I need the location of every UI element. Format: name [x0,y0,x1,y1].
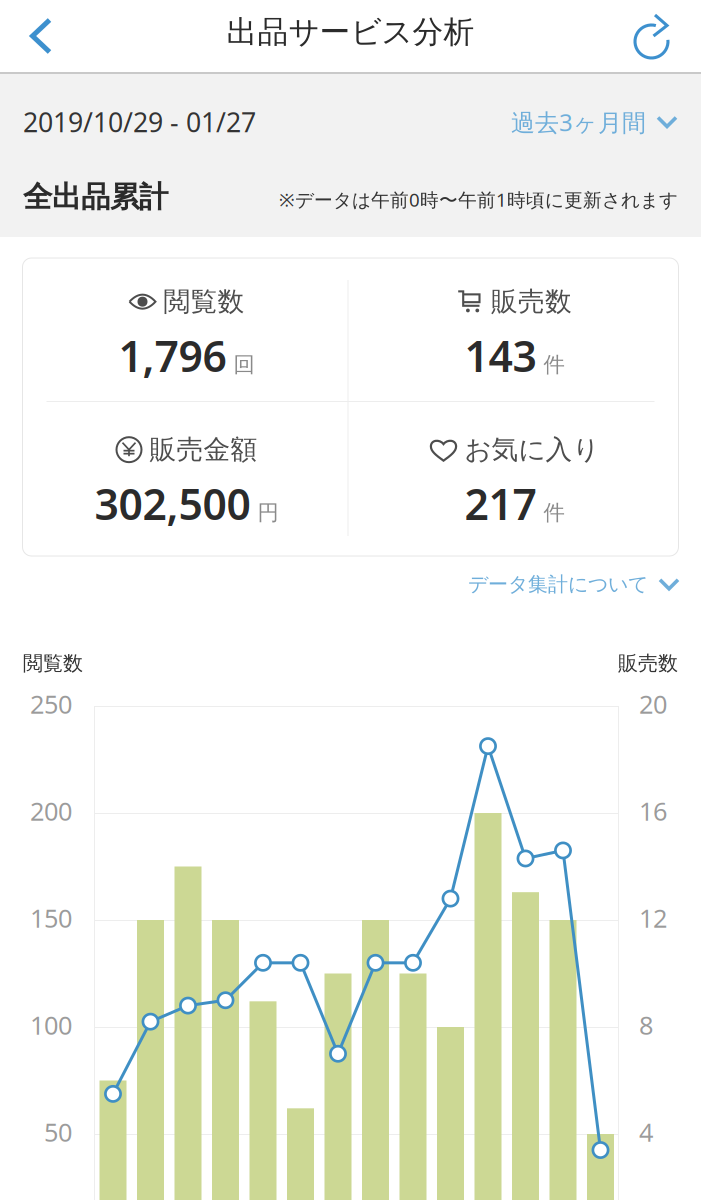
staticText: 全出品累計 [23,179,168,215]
staticText: 件 [543,499,564,526]
staticText: 8 [639,1008,653,1042]
staticText: 回 [233,351,254,378]
staticText: 143 [464,327,536,384]
staticText: 217 [464,475,536,532]
staticText: 12 [639,901,667,935]
button[interactable]: 戻る [0,3,82,69]
staticText: 円 [257,499,278,526]
staticText: 販売数 [491,285,572,318]
staticText: 1,796 [118,327,226,384]
staticText: 150 [30,901,72,935]
staticText: 200 [30,794,72,828]
staticText: 2019/10/29 - 01/27 [23,104,256,140]
staticText: ※データは午前0時〜午前1時頃に更新されます [279,187,678,212]
staticText: お気に入り [464,433,599,466]
button[interactable]: 更新 [619,3,685,69]
staticText: 販売数 [618,651,678,676]
staticText: 4 [639,1115,653,1149]
staticText: 件 [543,351,564,378]
staticText: 50 [44,1115,72,1149]
button[interactable]: データ集計について [468,572,680,597]
staticText: データ集計について [468,572,648,597]
staticText: 302,500 [94,475,250,532]
staticText: 出品サービス分析 [226,13,474,51]
staticText: 閲覧数 [23,651,83,676]
staticText: 20 [639,687,667,721]
staticText: 閲覧数 [163,285,244,318]
staticText: 250 [30,687,72,721]
button[interactable]: 過去3ヶ月間 [511,106,678,138]
staticText: 100 [30,1008,72,1042]
staticText: 過去3ヶ月間 [511,106,646,138]
staticText: 販売金額 [149,433,257,466]
staticText: 16 [639,794,667,828]
